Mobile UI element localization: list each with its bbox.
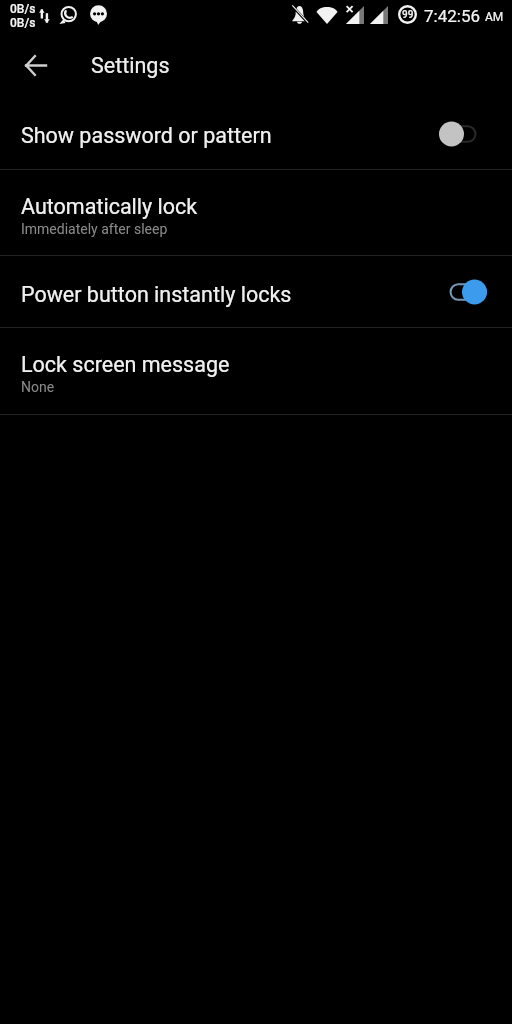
staticText: Settings xyxy=(91,53,170,78)
button[interactable]: Navigate up xyxy=(11,41,59,89)
staticText: Power button instantly locks xyxy=(21,282,292,307)
staticText: Immediately after sleep xyxy=(21,221,168,237)
staticText: AM xyxy=(485,10,504,24)
staticText: 0B/s xyxy=(10,16,36,30)
button[interactable]: Automatically lock xyxy=(0,170,512,255)
staticText: Lock screen message xyxy=(21,352,230,377)
staticText: 99 xyxy=(402,9,414,21)
button[interactable]: Show password or pattern xyxy=(0,98,512,169)
staticText: 0B/s xyxy=(10,2,36,16)
staticText: Show password or pattern xyxy=(21,123,272,148)
staticText: 7:42:56 xyxy=(424,6,481,26)
button[interactable]: Lock screen message xyxy=(0,328,512,414)
staticText: Automatically lock xyxy=(21,194,198,219)
staticText: None xyxy=(21,379,55,395)
button[interactable]: Power button instantly locks xyxy=(0,256,512,327)
